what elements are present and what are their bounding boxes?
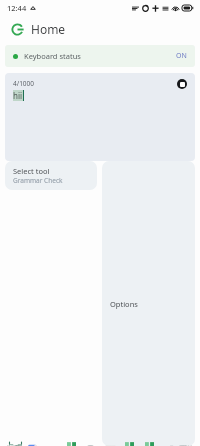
staticText: 12:44 <box>7 3 27 13</box>
button[interactable]: 4/1000 <box>5 73 195 161</box>
staticText: hii <box>13 90 23 101</box>
button[interactable]: Options <box>102 161 195 446</box>
staticText: Select tool <box>13 166 50 176</box>
staticText: Options <box>110 299 138 309</box>
button[interactable]: Clear text <box>177 79 187 89</box>
staticText: Keyboard status <box>24 51 81 61</box>
button[interactable]: Keyboard status <box>5 45 195 67</box>
staticText: ON <box>176 51 187 61</box>
staticText: Grammar Check <box>13 176 63 185</box>
staticText: 4/1000 <box>13 79 35 88</box>
staticText: Home <box>31 21 66 37</box>
button[interactable]: Select tool <box>5 161 97 190</box>
